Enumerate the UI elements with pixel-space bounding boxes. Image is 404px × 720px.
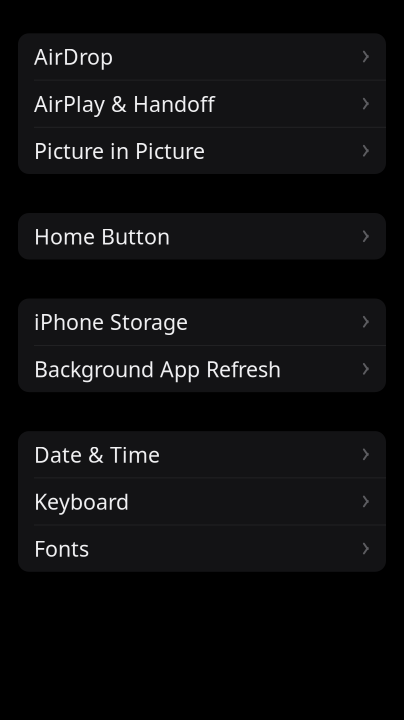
button[interactable]: Date & Time — [18, 431, 386, 478]
button[interactable]: AirDrop — [18, 33, 386, 80]
button[interactable]: AirPlay & Handoff — [18, 80, 386, 127]
staticText: Date & Time — [34, 440, 160, 468]
button[interactable]: iPhone Storage — [18, 298, 386, 346]
button[interactable]: Home Button — [18, 213, 386, 259]
button[interactable]: Background App Refresh — [18, 346, 386, 392]
button[interactable]: Fonts — [18, 525, 386, 572]
staticText: Home Button — [34, 222, 170, 250]
staticText: AirPlay & Handoff — [34, 89, 215, 118]
staticText: Picture in Picture — [34, 137, 205, 165]
staticText: iPhone Storage — [34, 308, 188, 336]
button[interactable]: Picture in Picture — [18, 127, 386, 174]
staticText: AirDrop — [34, 42, 113, 71]
button[interactable]: Keyboard — [18, 478, 386, 525]
staticText: Background App Refresh — [34, 355, 281, 383]
staticText: Keyboard — [34, 487, 129, 516]
staticText: Fonts — [34, 534, 89, 563]
